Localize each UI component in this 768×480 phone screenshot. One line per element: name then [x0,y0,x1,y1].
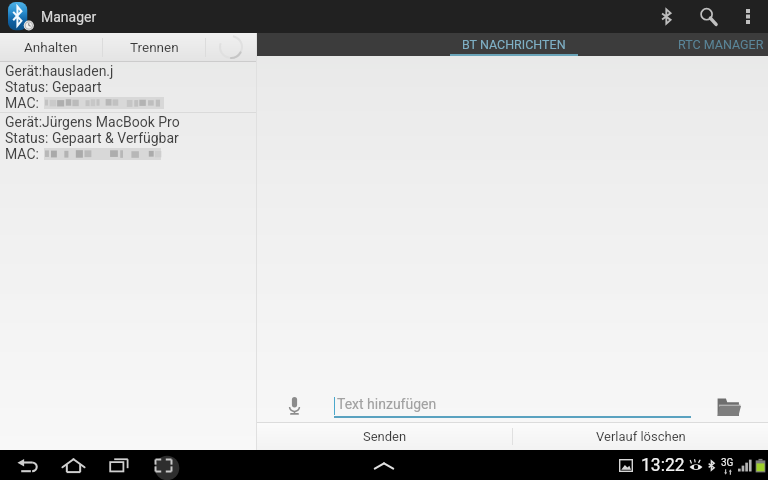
button[interactable]: Gerät:hausladen.j [0,62,256,112]
staticText: MAC: [5,95,39,111]
button[interactable]: Back [8,450,46,480]
staticText: RTC MANAGER [678,37,764,52]
button[interactable]: More options [730,0,766,33]
staticText: Trennen [130,39,179,55]
staticText: Senden [363,429,407,444]
staticText: 3G [721,457,734,469]
button[interactable]: BT NACHRICHTEN [450,33,578,56]
button[interactable]: Gerät:Jürgens MacBook Pro [0,113,256,163]
staticText: Verlauf löschen [596,429,686,444]
button[interactable]: Search [686,0,730,33]
button[interactable]: Recents [100,450,138,480]
staticText: Status: Gepaart [5,79,102,95]
button[interactable]: Screenshot [144,450,182,480]
button[interactable]: Home [54,450,92,480]
button[interactable]: App icon [8,0,34,33]
staticText: MAC: [5,146,39,162]
staticText: Text hinzufügen [337,396,437,412]
button[interactable]: RTC MANAGER [647,33,768,56]
staticText: Gerät:Jürgens MacBook Pro [5,114,180,130]
staticText: Gerät:hausladen.j [5,63,114,79]
button[interactable]: Anhalten [0,33,102,61]
button[interactable]: Open file [708,387,748,427]
button[interactable]: Senden [257,423,512,450]
staticText: Manager [41,9,97,25]
staticText: 13:22 [641,455,685,476]
staticText: Anhalten [24,39,78,55]
button[interactable]: Voice input [272,383,316,427]
staticText: BT NACHRICHTEN [462,37,566,52]
button[interactable]: Bluetooth [646,0,686,33]
button[interactable]: Trennen [103,33,205,61]
button[interactable]: Verlauf löschen [513,423,768,450]
staticText: Status: Gepaart & Verfügbar [5,130,179,146]
